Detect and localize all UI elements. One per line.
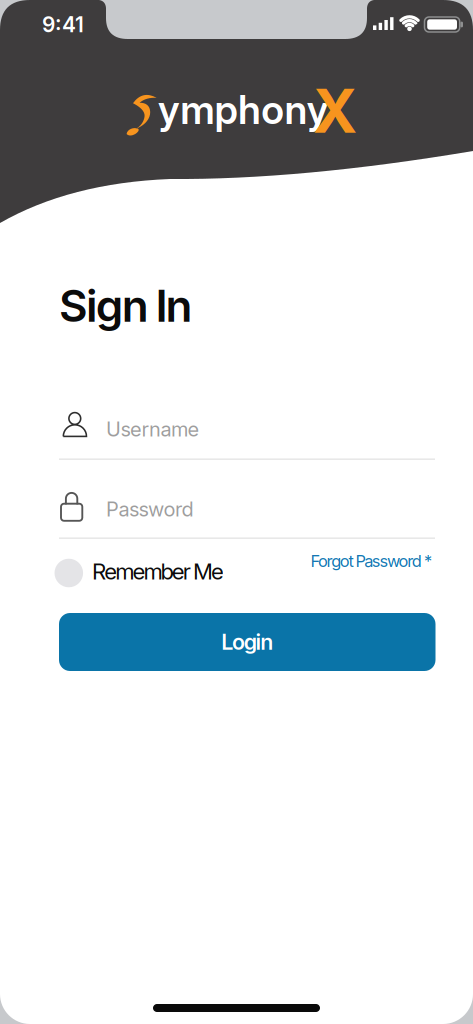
button[interactable]: Password xyxy=(59,489,435,539)
staticText: Username xyxy=(106,417,199,441)
button[interactable]: Forgot Password * xyxy=(232,551,432,571)
staticText: Password xyxy=(106,497,193,521)
staticText: Sign In xyxy=(59,279,192,332)
staticText: Remember Me xyxy=(92,558,224,585)
staticText: Login xyxy=(221,629,273,655)
staticText: Forgot Password * xyxy=(310,551,432,571)
staticText: 9:41 xyxy=(42,12,84,37)
button[interactable]: Login xyxy=(59,613,435,671)
staticText: X xyxy=(313,74,357,147)
button[interactable]: Username xyxy=(59,404,435,460)
button[interactable]: Remember Me xyxy=(54,559,224,587)
staticText: ymphony xyxy=(158,86,329,133)
